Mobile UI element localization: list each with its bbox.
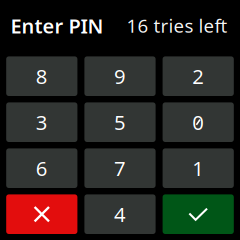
button[interactable]: 2 bbox=[163, 56, 234, 96]
button[interactable]: 7 bbox=[84, 148, 156, 188]
button[interactable]: 9 bbox=[84, 56, 156, 96]
button[interactable]: 6 bbox=[6, 148, 77, 188]
staticText: 5 bbox=[114, 108, 126, 136]
staticText: 1 bbox=[192, 154, 204, 182]
staticText: 8 bbox=[36, 62, 48, 90]
button[interactable]: 4 bbox=[84, 194, 156, 234]
button[interactable]: 3 bbox=[6, 102, 77, 142]
staticText: 2 bbox=[192, 62, 204, 90]
staticText: Enter PIN bbox=[10, 12, 103, 39]
staticText: 6 bbox=[36, 154, 48, 182]
button[interactable]: 0 bbox=[163, 102, 234, 142]
staticText: 7 bbox=[114, 154, 126, 182]
staticText: 0 bbox=[192, 108, 204, 136]
staticText: 16 tries left bbox=[126, 13, 227, 38]
button[interactable]: Confirm bbox=[163, 194, 234, 234]
button[interactable]: 1 bbox=[163, 148, 234, 188]
button[interactable]: Cancel bbox=[6, 194, 77, 234]
button[interactable]: 5 bbox=[84, 102, 156, 142]
staticText: 3 bbox=[36, 108, 48, 136]
button[interactable]: 8 bbox=[6, 56, 77, 96]
staticText: 9 bbox=[114, 62, 126, 90]
staticText: 4 bbox=[114, 200, 126, 228]
